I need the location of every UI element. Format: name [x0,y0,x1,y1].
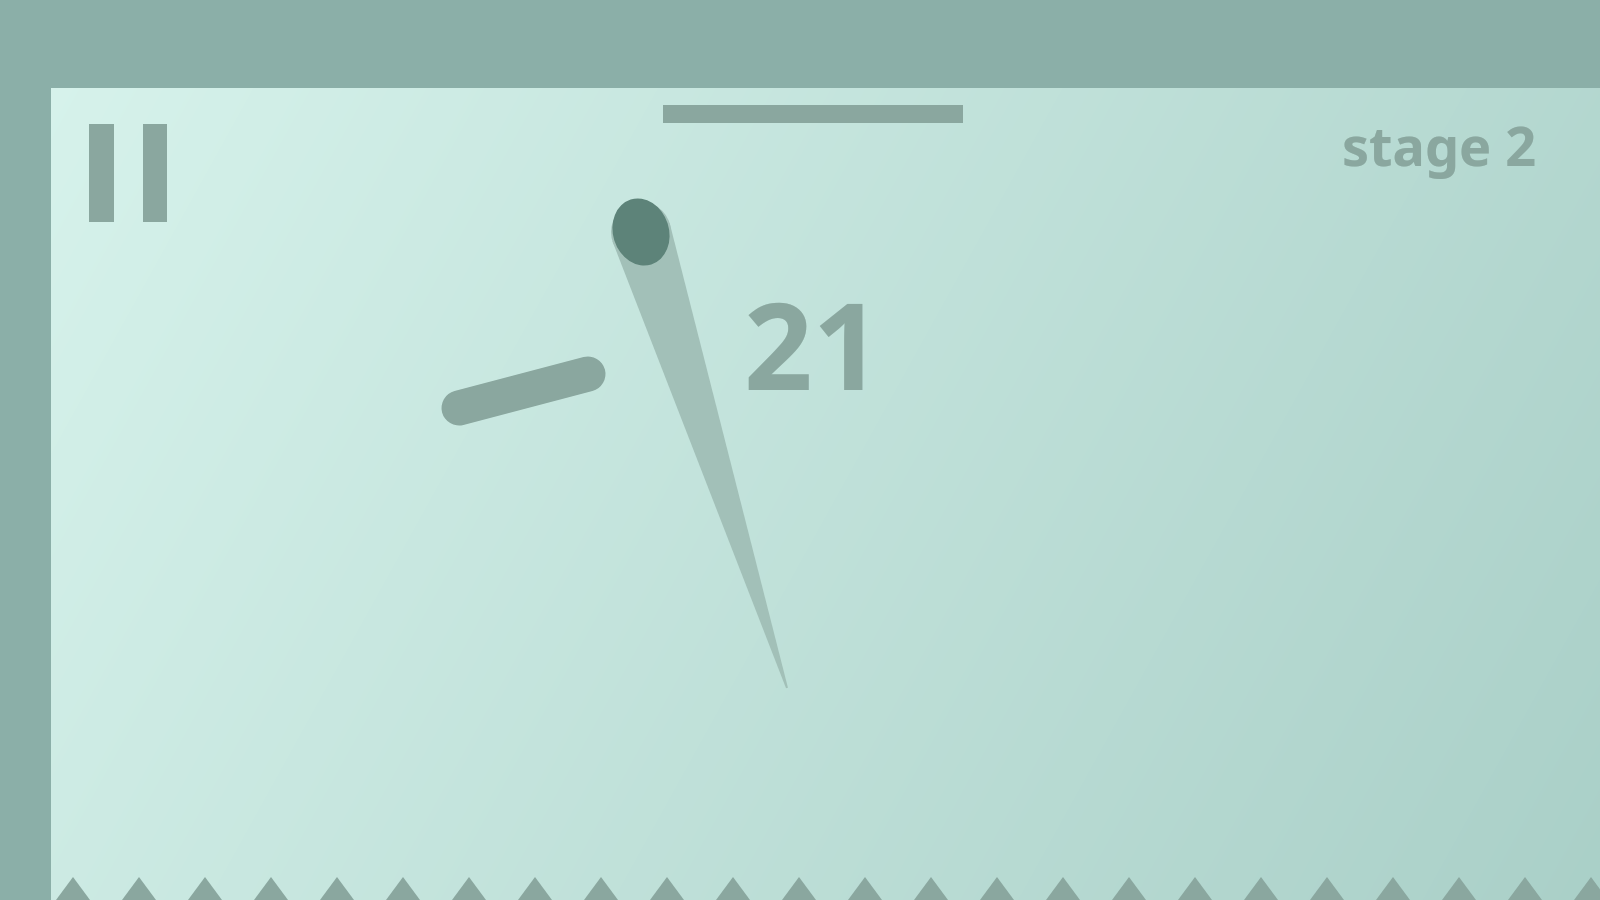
button[interactable]: Game playfield [0,0,1600,900]
